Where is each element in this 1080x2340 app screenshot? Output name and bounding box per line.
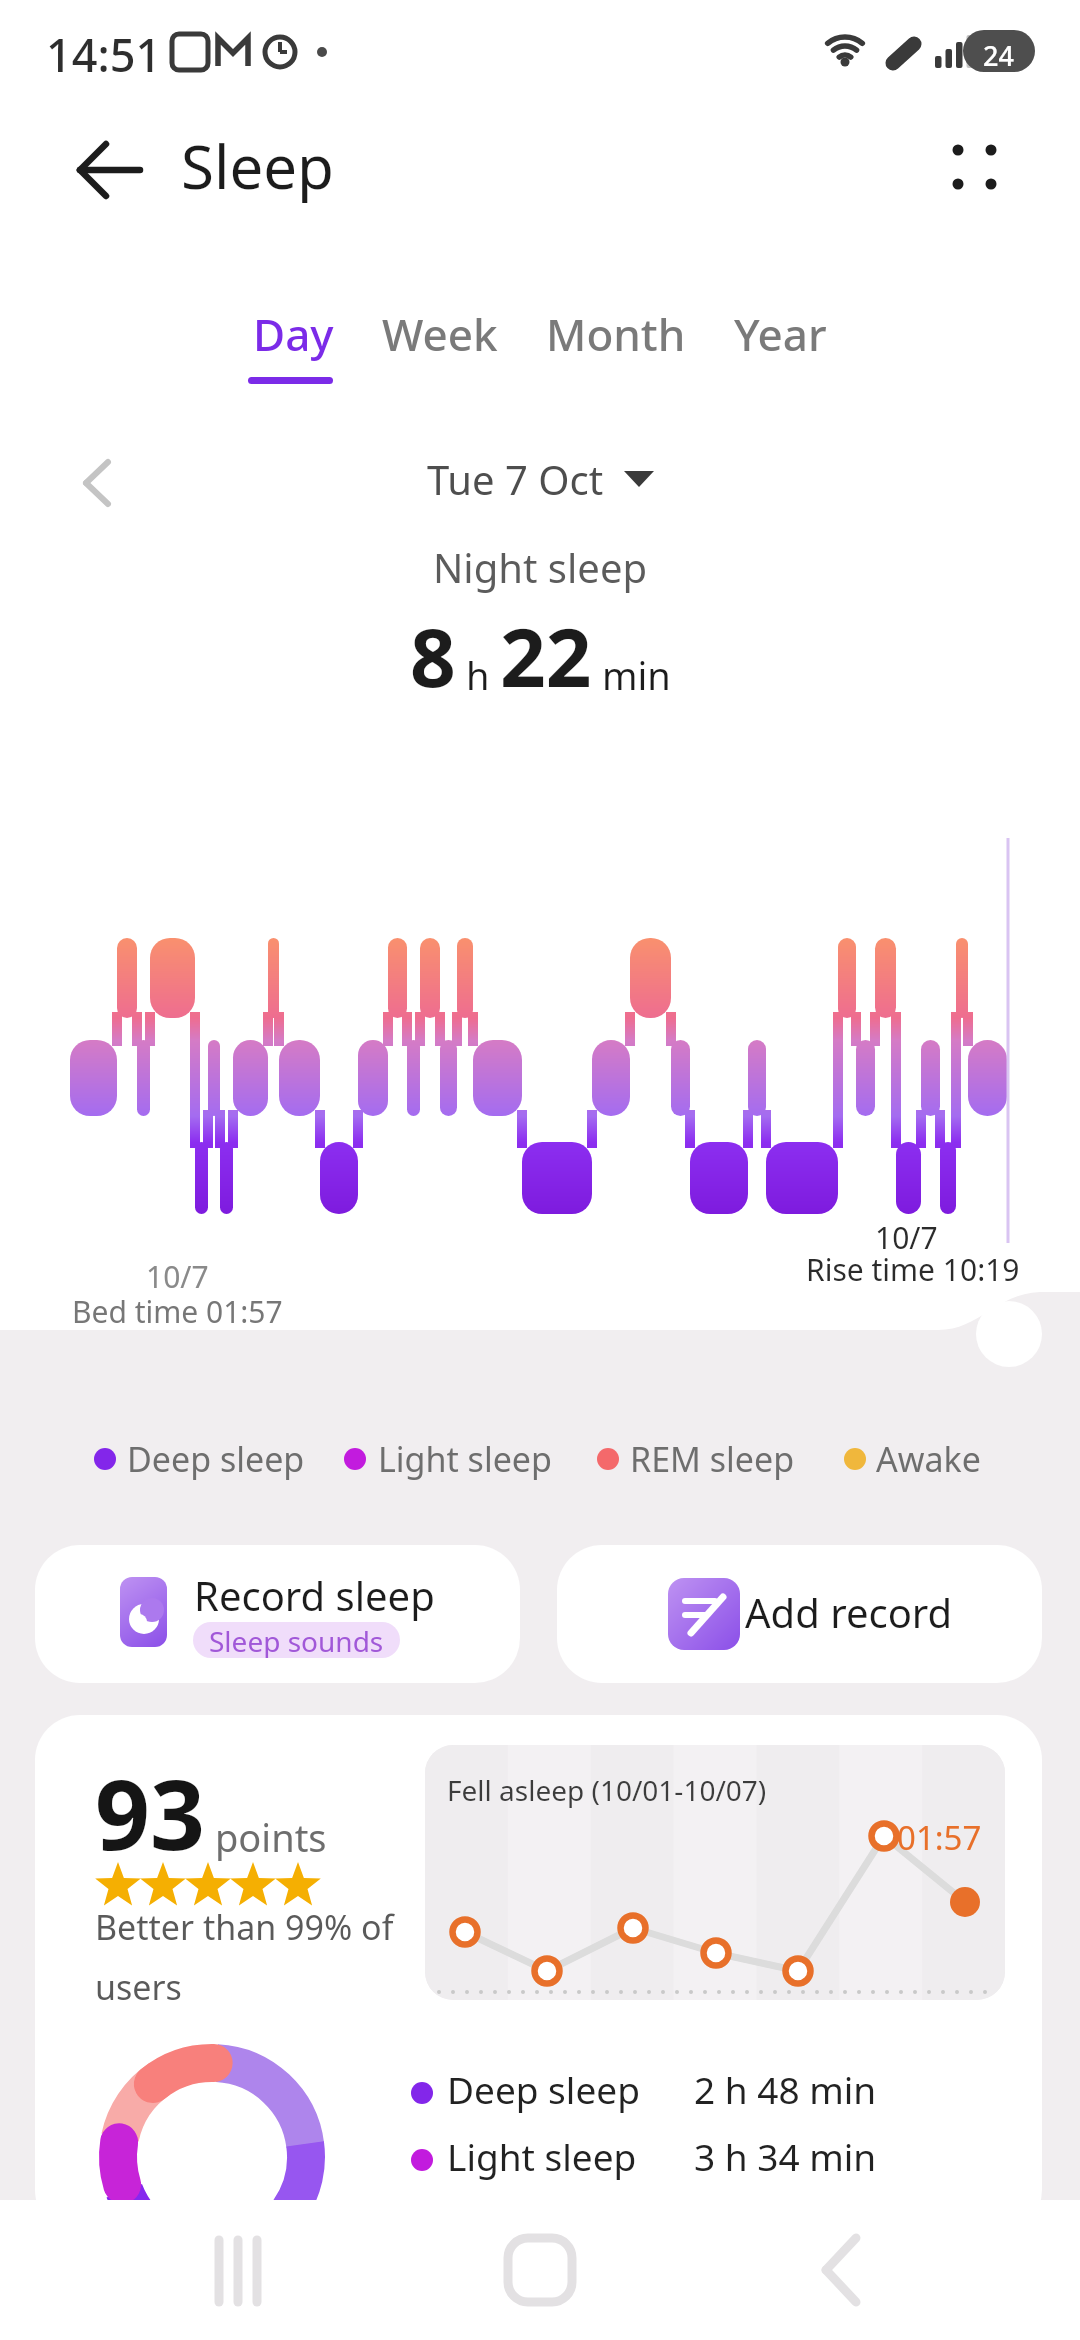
staticText: Night sleep (0, 540, 1080, 594)
staticText: Rise time 10:19 (806, 1249, 1020, 1290)
button[interactable] (60, 445, 130, 520)
button[interactable]: 93 (35, 1715, 1042, 2235)
staticText: Light sleep (378, 1436, 552, 1482)
button[interactable] (790, 2220, 890, 2320)
staticText: Sleep sounds (209, 1622, 384, 1658)
staticText: 10/7 (146, 1256, 209, 1297)
staticText: Light sleep (447, 2131, 637, 2181)
button[interactable]: Tue 7 Oct (427, 452, 654, 506)
staticText: h (456, 649, 500, 701)
staticText: 22 (500, 601, 592, 710)
staticText: Sleep (181, 125, 334, 207)
staticText: points (215, 1811, 327, 1863)
staticText: Tue 7 Oct (427, 452, 604, 506)
staticText: 2 h 48 min (694, 2064, 877, 2114)
staticText: Add record (745, 1585, 953, 1639)
button[interactable]: Add record (557, 1545, 1042, 1683)
staticText: Fell asleep (10/01-10/07) (447, 1771, 767, 1809)
button[interactable] (190, 2220, 290, 2320)
button[interactable]: Record sleep (35, 1545, 520, 1683)
staticText: 3 h 34 min (694, 2131, 877, 2181)
staticText: Better than 99% of users (95, 1904, 394, 2010)
button[interactable]: Year (710, 304, 851, 364)
button[interactable] (55, 135, 155, 205)
button[interactable]: Week (358, 304, 522, 364)
staticText: min (592, 649, 671, 701)
button[interactable]: Month (522, 304, 710, 364)
staticText: Bed time 01:57 (72, 1291, 283, 1332)
staticText: Week (382, 304, 498, 364)
staticText: Deep sleep (447, 2064, 640, 2114)
staticText: 24 (983, 37, 1014, 74)
staticText: Deep sleep (127, 1436, 305, 1482)
staticText: 8 (410, 601, 456, 710)
staticText: 93 (95, 1747, 205, 1878)
staticText: 14:51 (46, 24, 162, 85)
staticText: 01:57 (897, 1815, 982, 1860)
staticText: 10/7 (875, 1217, 938, 1258)
staticText: Day (253, 304, 334, 364)
staticText: Awake (876, 1436, 981, 1482)
button[interactable] (490, 2220, 590, 2320)
staticText: Year (734, 304, 827, 364)
staticText: Month (546, 304, 686, 364)
staticText: Record sleep (194, 1568, 435, 1622)
staticText: REM sleep (630, 1436, 795, 1482)
button[interactable]: Day (229, 304, 358, 364)
button[interactable] (976, 1301, 1042, 1367)
button[interactable] (935, 130, 1010, 205)
